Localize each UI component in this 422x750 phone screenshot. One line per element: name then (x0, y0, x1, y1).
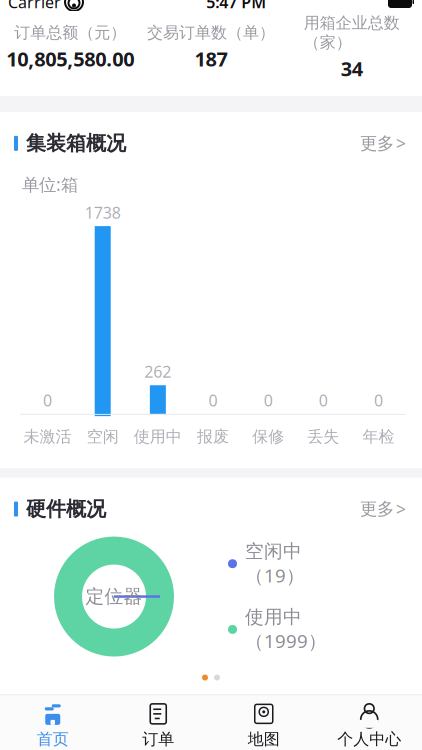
staticText: 订单 (142, 729, 174, 749)
staticText: 5:47 PM (206, 0, 266, 13)
button[interactable]: 地图 (211, 695, 316, 750)
staticText: 报废 (197, 427, 229, 447)
staticText: 地图 (248, 729, 280, 749)
staticText: > (396, 497, 406, 520)
staticText: 使用中（1999） (245, 606, 327, 653)
staticText: 保修 (252, 427, 284, 447)
staticText: 0 (208, 390, 217, 411)
staticText: 丢失 (307, 427, 339, 447)
staticText: 使用中 (134, 427, 182, 447)
staticText: Carrier (8, 0, 61, 13)
staticText: 0 (319, 390, 328, 411)
staticText: 用箱企业总数（家） (304, 13, 400, 52)
staticText: 262 (144, 361, 171, 382)
staticText: 首页 (37, 729, 69, 749)
staticText: 0 (43, 390, 52, 411)
staticText: 0 (264, 390, 273, 411)
button[interactable]: 首页 (0, 695, 105, 750)
button[interactable]: 个人中心 (316, 695, 422, 750)
button[interactable]: 订单 (105, 695, 211, 750)
staticText: 10,805,580.00 (6, 45, 134, 72)
staticText: 年检 (362, 427, 394, 447)
staticText: 单位:箱 (22, 173, 78, 196)
staticText: > (396, 132, 406, 155)
staticText: 个人中心 (337, 729, 401, 749)
staticText: 更多 (360, 133, 394, 154)
staticText: 34 (341, 55, 363, 82)
staticText: 0 (374, 390, 383, 411)
button[interactable]: 更多 (350, 128, 408, 159)
staticText: 集装箱概况 (26, 131, 126, 156)
staticText: 交易订单数（单） (147, 23, 275, 42)
button[interactable]: 更多 (350, 493, 408, 524)
staticText: 未激活 (24, 427, 72, 447)
staticText: 187 (194, 45, 227, 72)
staticText: 空闲 (87, 427, 119, 447)
staticText: 空闲中（19） (245, 540, 305, 587)
staticText: 定位器 (85, 585, 142, 608)
staticText: 硬件概况 (26, 497, 106, 521)
staticText: 订单总额（元） (14, 23, 126, 42)
staticText: 更多 (360, 498, 394, 520)
staticText: 1738 (85, 202, 121, 223)
